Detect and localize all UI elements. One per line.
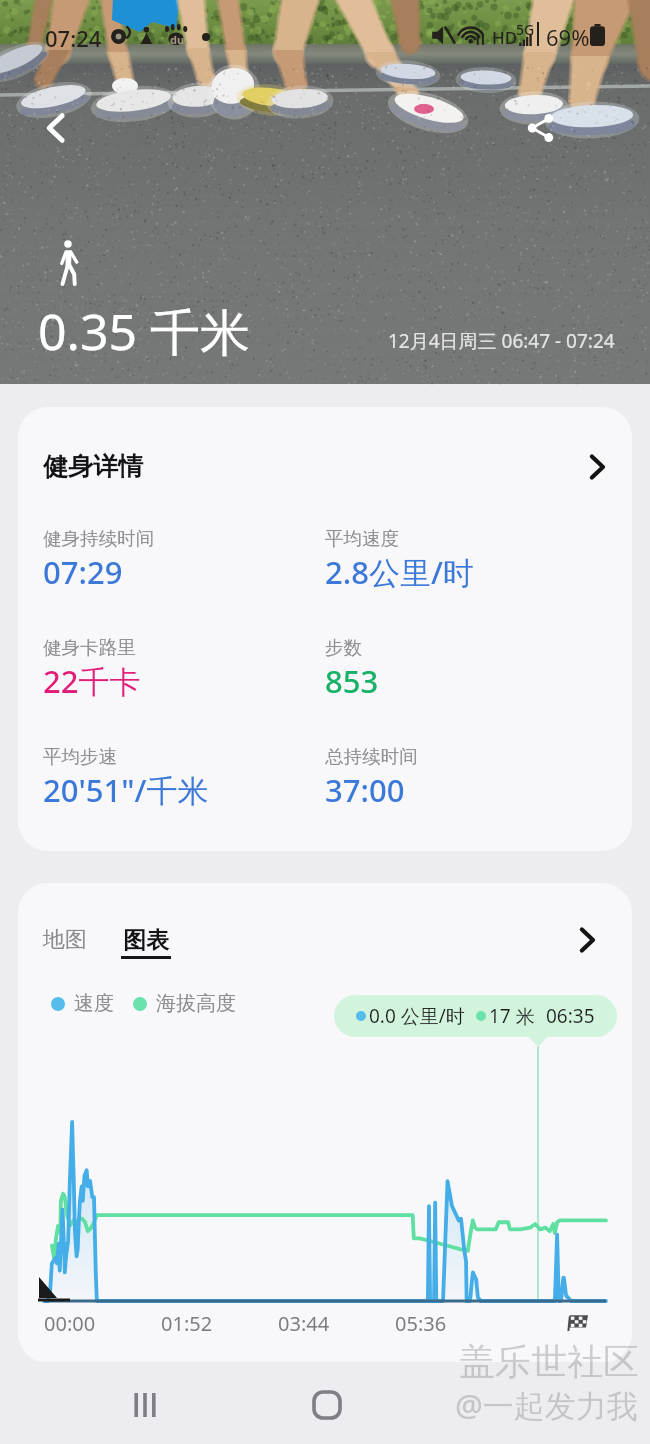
staticText: 12月4日周三 06:47 - 07:24 bbox=[388, 328, 615, 354]
staticText: 07:29 bbox=[43, 551, 123, 593]
staticText: HD bbox=[492, 26, 518, 49]
staticText: 平均步速 bbox=[43, 745, 117, 768]
staticText: 健身持续时间 bbox=[43, 527, 154, 550]
staticText: 22千卡 bbox=[43, 660, 141, 702]
staticText: 2.8公里/时 bbox=[325, 551, 474, 593]
staticText: 01:52 bbox=[161, 1310, 213, 1337]
staticText: 5G bbox=[516, 20, 535, 39]
staticText: 海拔高度 bbox=[156, 991, 236, 1016]
staticText: 37:00 bbox=[325, 769, 405, 811]
staticText: 03:44 bbox=[278, 1310, 330, 1337]
button[interactable]: 图表 bbox=[121, 926, 171, 959]
staticText: 00:00 bbox=[44, 1310, 96, 1337]
staticText: 05:36 bbox=[395, 1310, 447, 1337]
staticText: 平均速度 bbox=[325, 527, 399, 550]
staticText: 图表 bbox=[123, 926, 169, 955]
button[interactable]: Expand chart bbox=[568, 921, 606, 959]
staticText: 07:24 bbox=[45, 23, 102, 53]
staticText: 健身详情 bbox=[43, 451, 143, 482]
staticText: du bbox=[170, 32, 185, 47]
button[interactable]: Back bbox=[28, 100, 84, 156]
staticText: 步数 bbox=[325, 636, 362, 659]
button[interactable]: 地图 bbox=[43, 926, 87, 954]
staticText: @一起发力我 bbox=[455, 1384, 638, 1426]
staticText: 0.35 千米 bbox=[38, 297, 251, 365]
staticText: 地图 bbox=[43, 926, 87, 954]
button[interactable]: Back bbox=[470, 1370, 540, 1440]
staticText: 17 米 bbox=[489, 1003, 535, 1029]
button[interactable]: 健身详情 bbox=[18, 407, 632, 851]
staticText: 69% bbox=[546, 22, 590, 52]
staticText: 0.0 公里/时 bbox=[369, 1003, 465, 1029]
button[interactable]: Share bbox=[512, 100, 568, 156]
staticText: 盖乐世社区 bbox=[459, 1339, 639, 1384]
staticText: 速度 bbox=[74, 991, 114, 1016]
staticText: 853 bbox=[325, 660, 379, 702]
staticText: 总持续时间 bbox=[325, 745, 418, 768]
staticText: 06:35 bbox=[546, 1003, 595, 1029]
staticText: 20'51"/千米 bbox=[43, 769, 209, 811]
button[interactable]: 0.0 公里/时 bbox=[334, 995, 617, 1037]
button[interactable]: Home bbox=[292, 1370, 362, 1440]
button[interactable]: Recents bbox=[110, 1370, 180, 1440]
staticText: 健身卡路里 bbox=[43, 636, 136, 659]
